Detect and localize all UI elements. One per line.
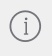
- button[interactable]: Info: [0, 0, 52, 56]
